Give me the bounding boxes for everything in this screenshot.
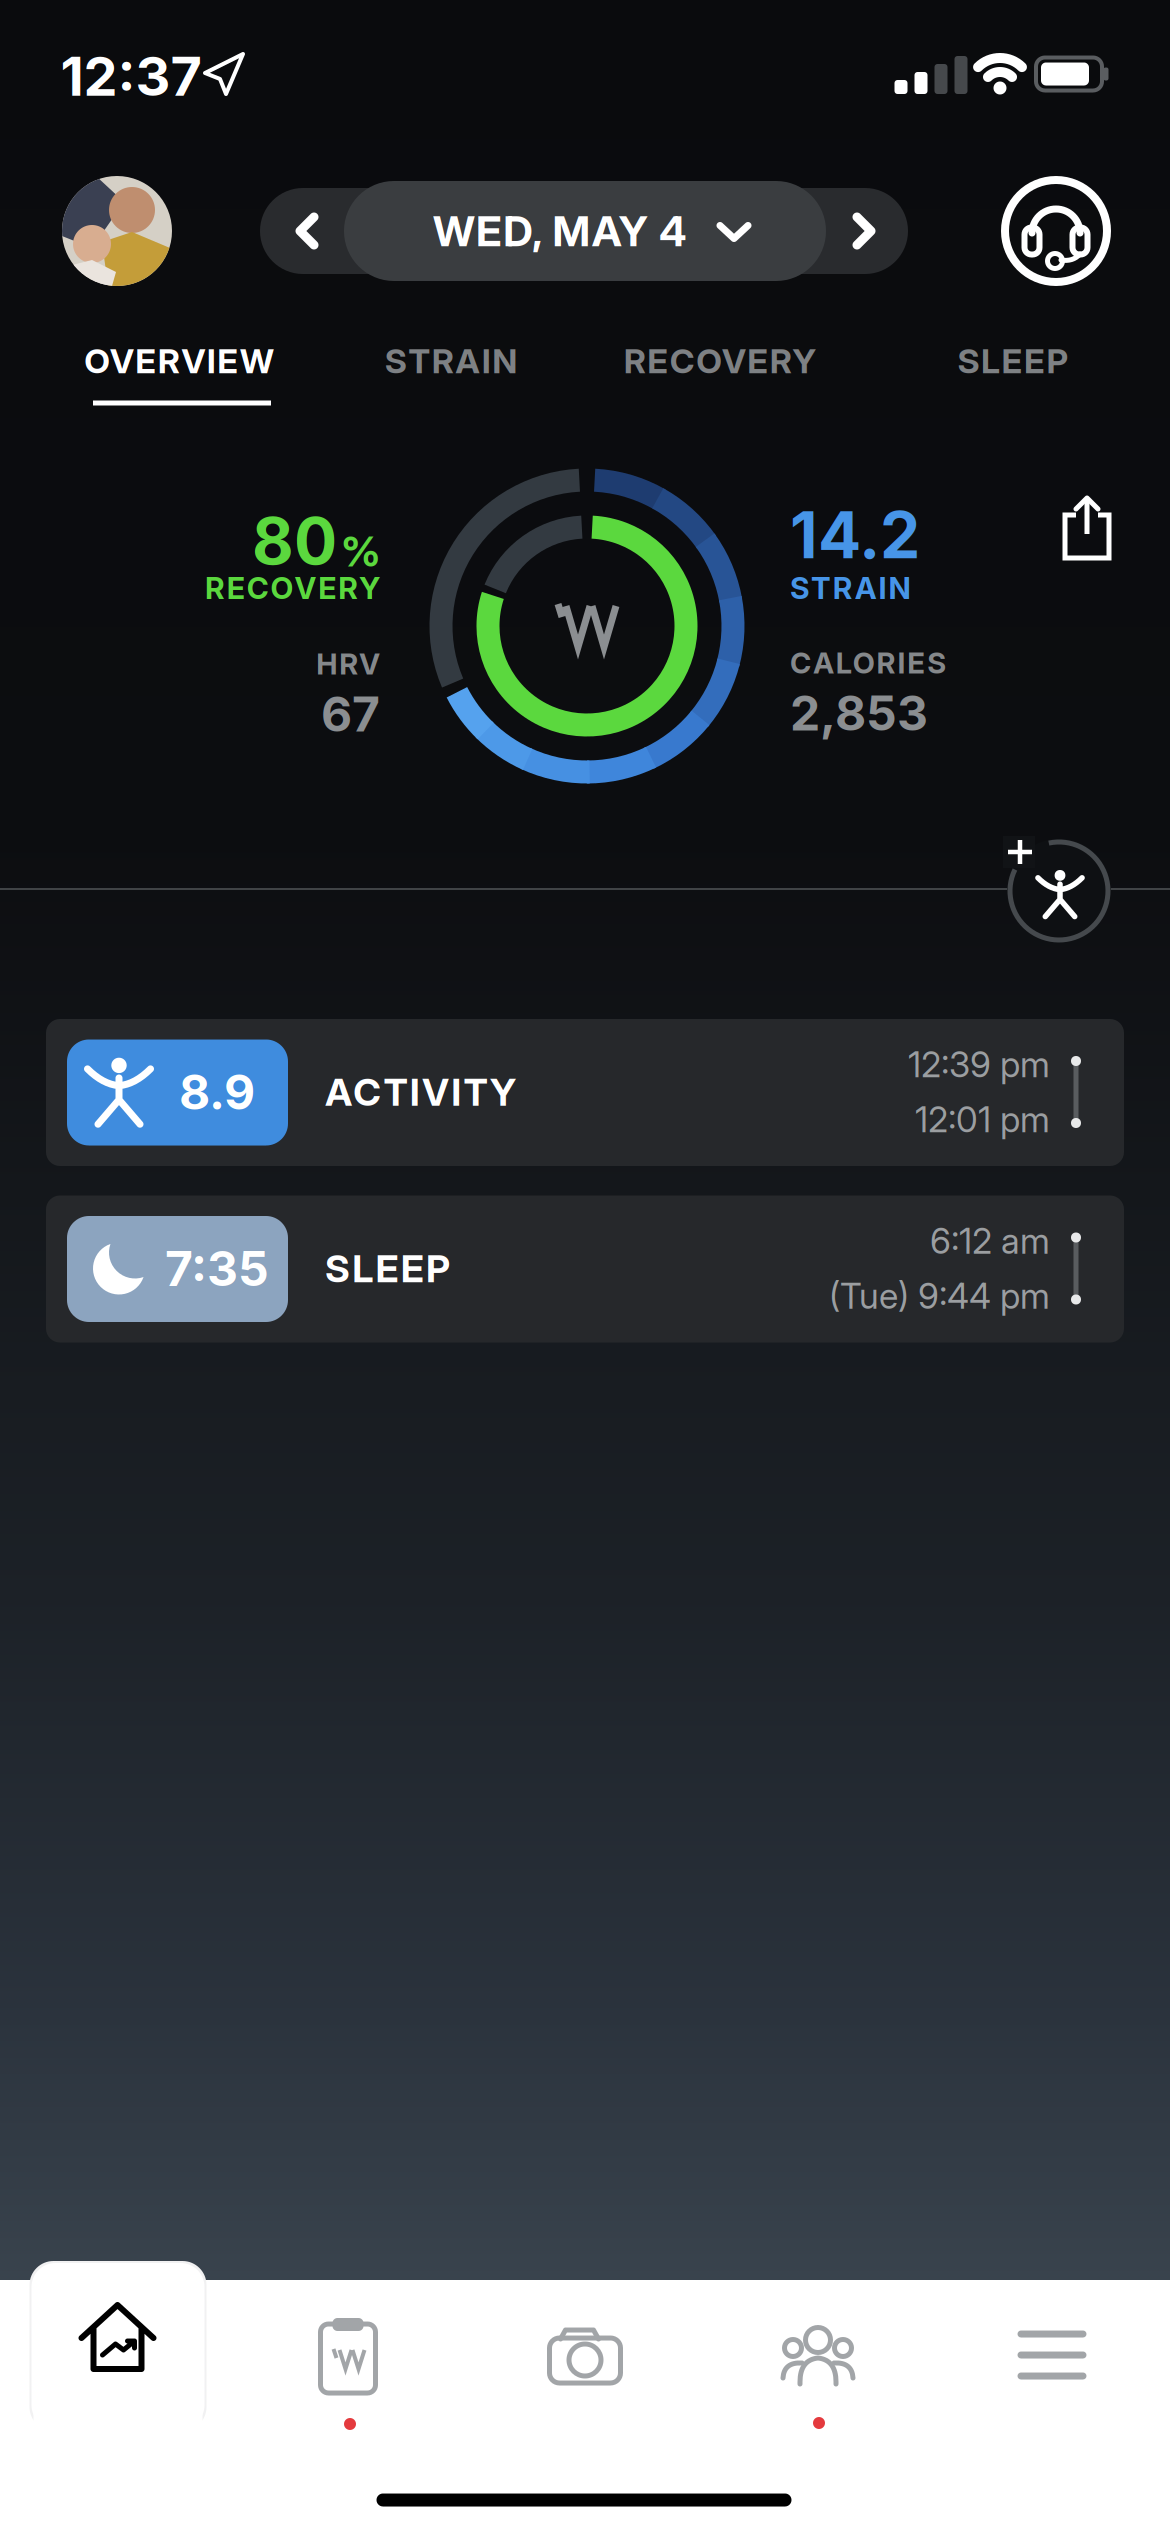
button[interactable]: Profile [62, 176, 172, 286]
button[interactable]: Support [1005, 180, 1107, 282]
staticText: 7:35 [165, 1239, 269, 1298]
staticText: 67 [321, 685, 380, 743]
staticText: RECOVERY [205, 570, 380, 606]
button[interactable]: Home [29, 2261, 206, 2431]
staticText: SLEEP [325, 1245, 450, 1291]
staticText: 80 [252, 502, 337, 580]
staticText: 12:39 pm [908, 1043, 1050, 1086]
staticText: 12:01 pm [915, 1098, 1050, 1141]
button[interactable]: SLEEP [913, 339, 1113, 383]
button[interactable]: STRAIN [341, 339, 561, 383]
staticText: 14.2 [790, 496, 920, 574]
staticText: ACTIVITY [325, 1069, 517, 1115]
button[interactable]: Previous day [282, 203, 338, 259]
staticText: STRAIN [385, 340, 517, 381]
button[interactable]: Camera [533, 2313, 636, 2399]
staticText: 6:12 am [930, 1220, 1050, 1262]
button[interactable]: Select date [344, 181, 826, 281]
button[interactable]: Community [766, 2310, 870, 2402]
button[interactable]: Plan [304, 2301, 391, 2409]
staticText: % [341, 526, 380, 577]
staticText: HRV [316, 646, 380, 682]
staticText: (Tue) 9:44 pm [829, 1275, 1050, 1317]
staticText: SLEEP [957, 340, 1068, 381]
staticText: STRAIN [790, 570, 910, 606]
button[interactable]: Share [1052, 486, 1122, 570]
button[interactable]: 8.9 [46, 1019, 1124, 1166]
button[interactable]: Next day [833, 203, 889, 259]
staticText: OVERVIEW [84, 340, 274, 381]
staticText: CALORIES [790, 645, 946, 681]
button[interactable]: OVERVIEW [49, 339, 309, 383]
button[interactable]: 7:35 [46, 1195, 1124, 1342]
staticText: 8.9 [179, 1063, 255, 1121]
button[interactable]: Menu [1001, 2314, 1102, 2395]
staticText: 2,853 [790, 684, 928, 742]
button[interactable]: RECOVERY [590, 339, 850, 383]
staticText: 12:37 [60, 43, 201, 109]
staticText: RECOVERY [624, 340, 816, 381]
staticText: WED, MAY 4 [433, 206, 687, 256]
button[interactable]: Add activity [1007, 839, 1111, 943]
